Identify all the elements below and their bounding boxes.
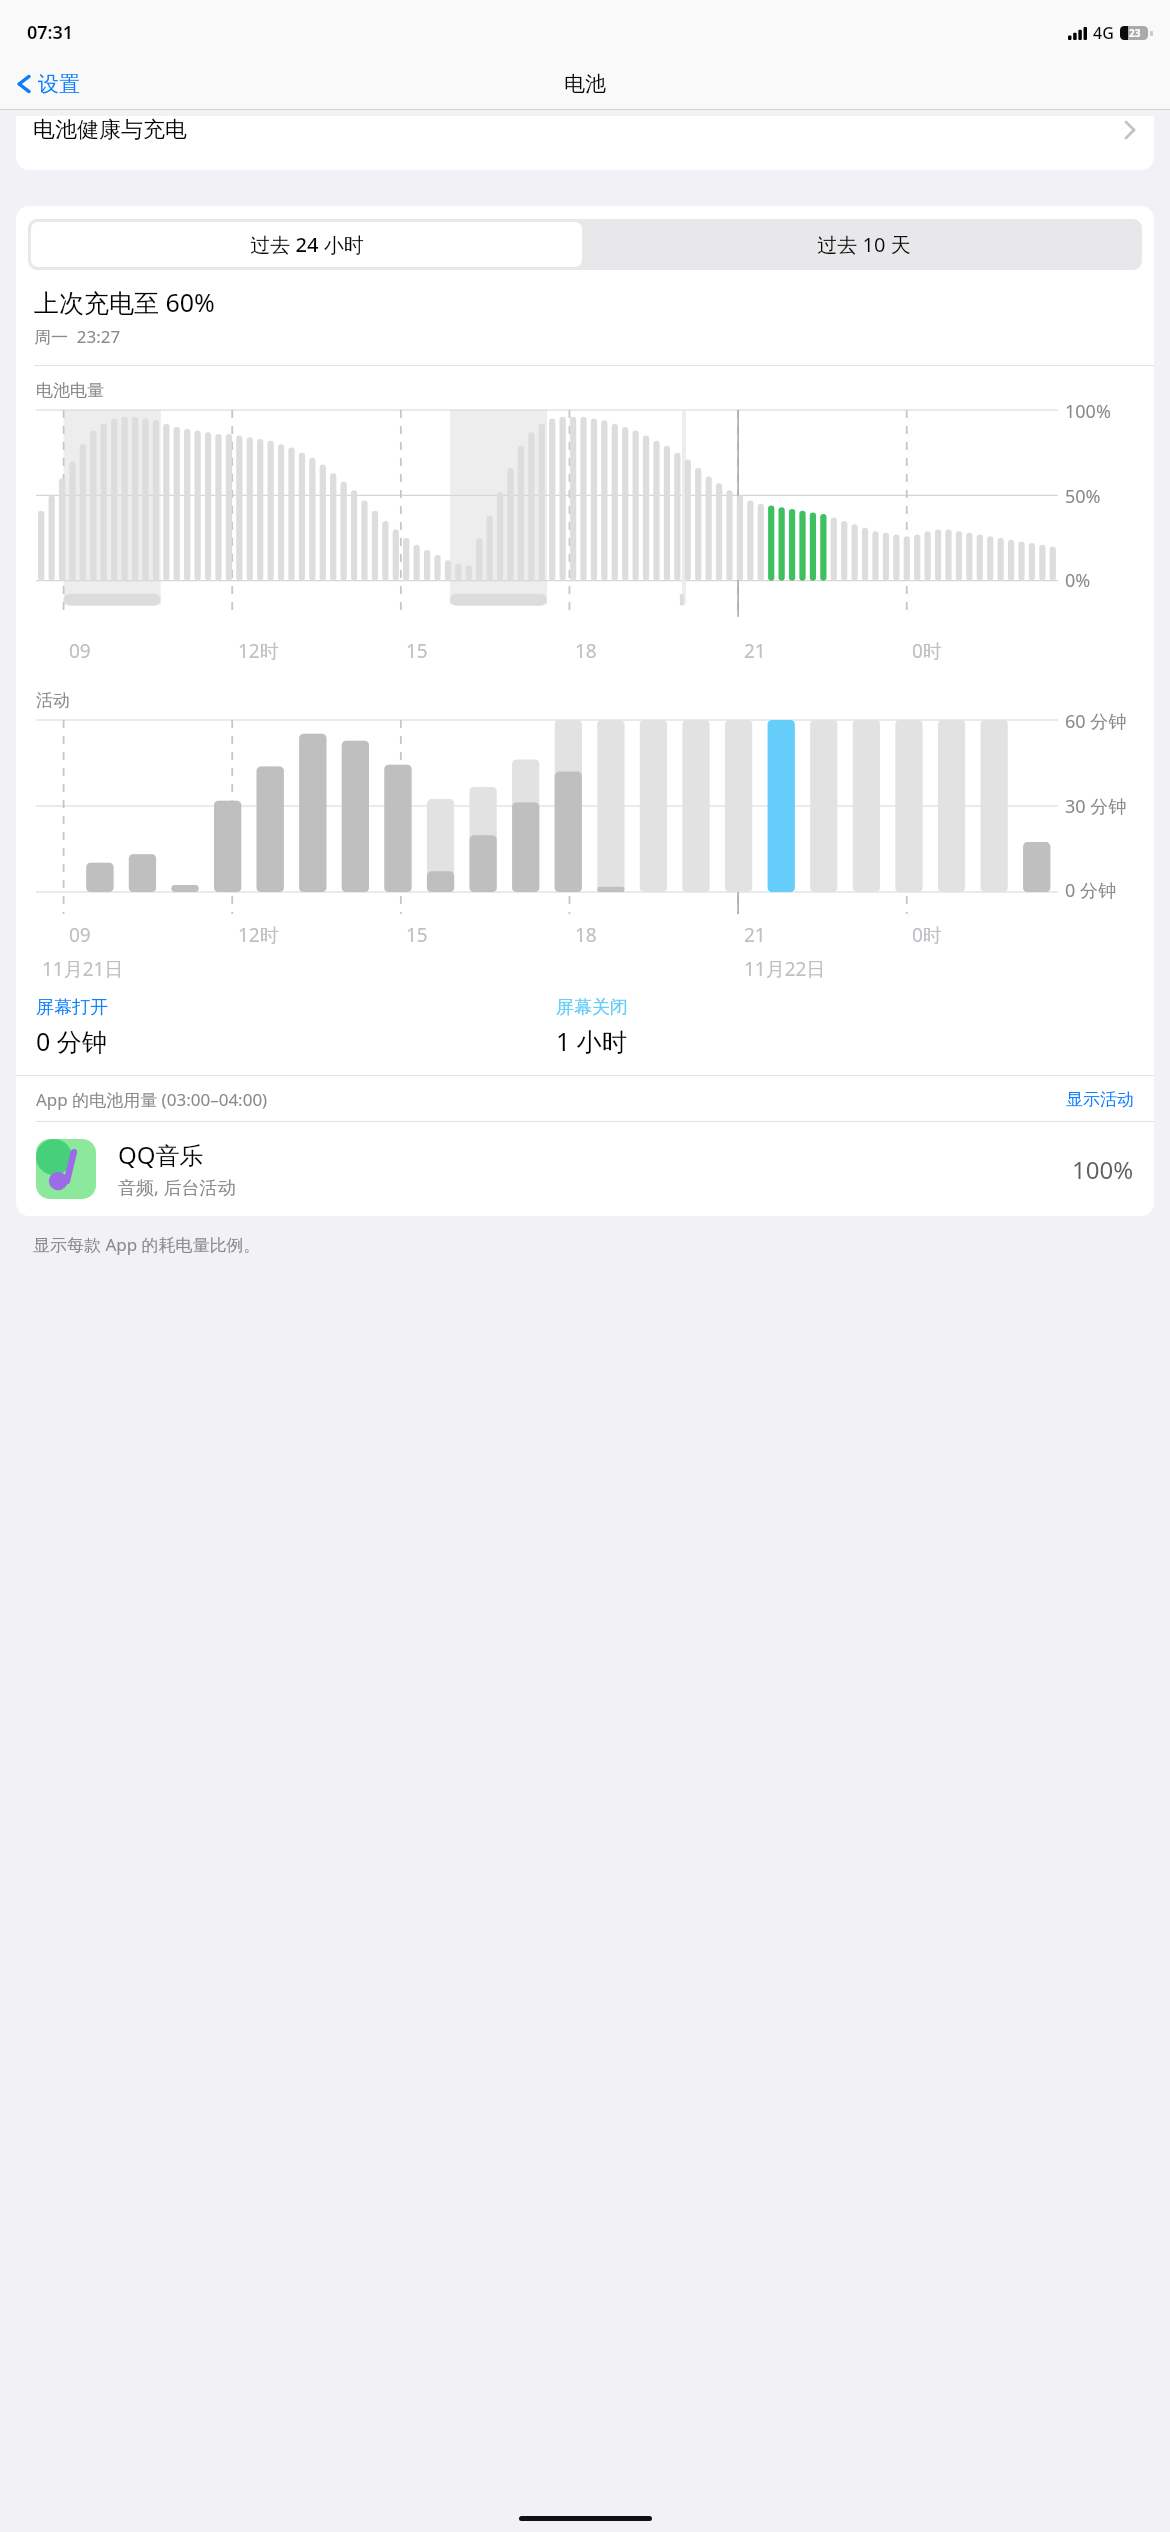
staticText: 屏幕关闭 bbox=[556, 996, 628, 1019]
staticText: App 的电池用量 (03:00–04:00) bbox=[36, 1088, 268, 1111]
staticText: 周一 23:27 bbox=[34, 325, 121, 348]
button[interactable]: 电池健康与充电 bbox=[16, 116, 1154, 170]
staticText: 09 bbox=[69, 922, 91, 948]
staticText: 07:31 bbox=[27, 20, 74, 45]
staticText: 30 分钟 bbox=[1065, 794, 1127, 819]
button[interactable]: 返回 bbox=[11, 66, 84, 102]
staticText: 电池健康与充电 bbox=[33, 116, 187, 144]
button[interactable]: 过去 10 天 bbox=[585, 219, 1142, 270]
staticText: 15 bbox=[406, 922, 428, 948]
staticText: 12时 bbox=[238, 638, 279, 664]
staticText: 50% bbox=[1065, 484, 1101, 509]
staticText: 过去 10 天 bbox=[817, 231, 911, 258]
staticText: 0时 bbox=[912, 922, 942, 948]
staticText: 0 分钟 bbox=[1065, 878, 1116, 903]
staticText: 0% bbox=[1065, 568, 1091, 593]
staticText: 0时 bbox=[912, 638, 942, 664]
staticText: 21 bbox=[744, 638, 766, 664]
staticText: 4G bbox=[1093, 22, 1114, 44]
staticText: 100% bbox=[1065, 399, 1111, 424]
staticText: QQ音乐 bbox=[118, 1138, 204, 1171]
staticText: 0 分钟 bbox=[36, 1024, 107, 1058]
staticText: 11月22日 bbox=[744, 956, 826, 982]
staticText: 11月21日 bbox=[42, 956, 124, 982]
staticText: 电池电量 bbox=[36, 380, 104, 401]
staticText: 音频, 后台活动 bbox=[118, 1175, 236, 1200]
staticText: 18 bbox=[575, 922, 597, 948]
other: 返回 bbox=[15, 70, 34, 98]
staticText: 18 bbox=[575, 638, 597, 664]
staticText: 100% bbox=[1072, 1153, 1134, 1186]
staticText: 设置 bbox=[38, 71, 80, 97]
staticText: 60 分钟 bbox=[1065, 709, 1127, 734]
staticText: 电池 bbox=[564, 71, 606, 97]
staticText: 12时 bbox=[238, 922, 279, 948]
staticText: 显示每款 App 的耗电量比例。 bbox=[33, 1233, 261, 1256]
staticText: 上次充电至 60% bbox=[34, 285, 215, 319]
button[interactable]: QQ音乐 bbox=[16, 1122, 1154, 1216]
staticText: 活动 bbox=[36, 690, 70, 711]
staticText: 23 bbox=[1129, 26, 1141, 40]
staticText: 21 bbox=[744, 922, 766, 948]
staticText: 屏幕打开 bbox=[36, 996, 108, 1019]
staticText: 1 小时 bbox=[556, 1024, 627, 1058]
button[interactable]: 过去 24 小时 bbox=[31, 222, 582, 267]
staticText: 过去 24 小时 bbox=[250, 231, 364, 258]
staticText: 09 bbox=[69, 638, 91, 664]
button[interactable]: 显示活动 bbox=[1066, 1089, 1134, 1110]
staticText: 显示活动 bbox=[1066, 1089, 1134, 1110]
staticText: 15 bbox=[406, 638, 428, 664]
